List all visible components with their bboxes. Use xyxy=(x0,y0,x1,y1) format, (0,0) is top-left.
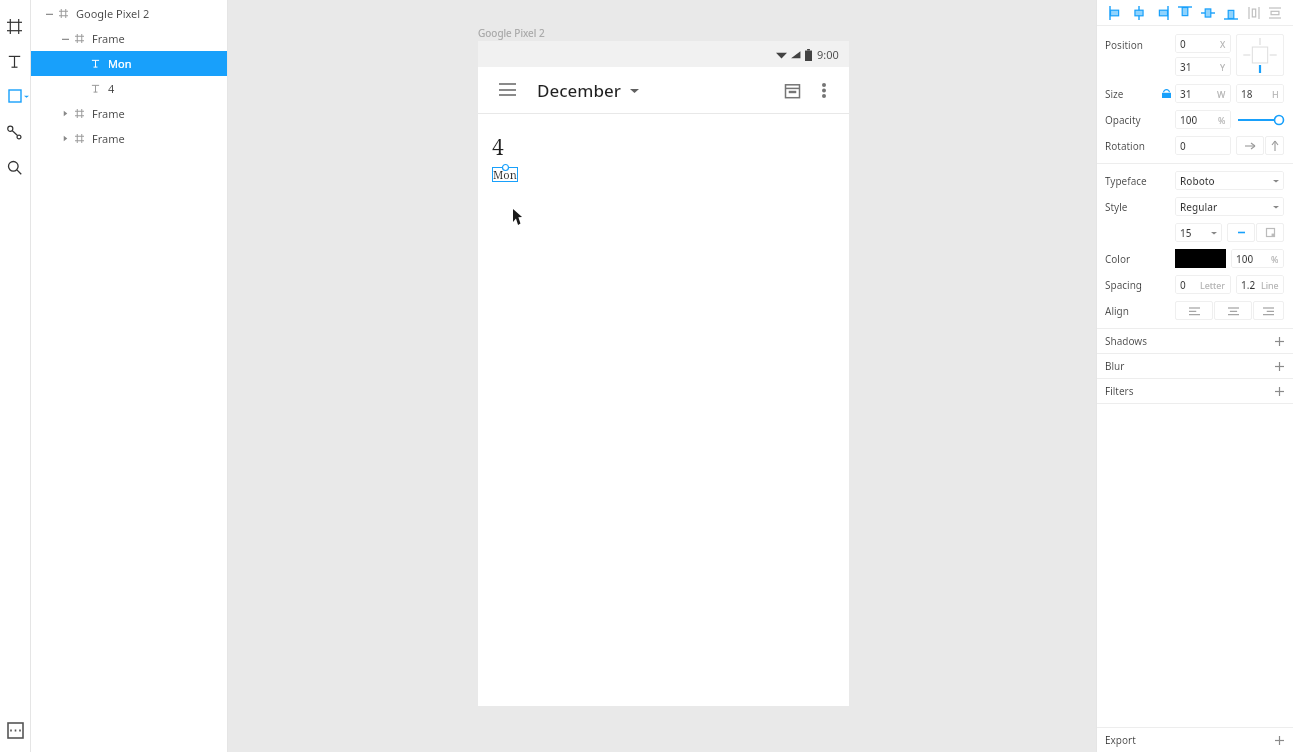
button[interactable]: 0 xyxy=(1175,34,1231,53)
button[interactable]: 31 xyxy=(1175,57,1231,76)
staticText: 18 xyxy=(1241,87,1253,101)
staticText: Typeface xyxy=(1105,174,1147,188)
staticText: Blur xyxy=(1105,359,1125,373)
button[interactable]: Align top xyxy=(1174,2,1196,24)
button[interactable]: Align vertical center xyxy=(1197,2,1219,24)
staticText: Align xyxy=(1105,304,1129,318)
button[interactable]: Align text left xyxy=(1175,301,1213,320)
button[interactable]: Constraints xyxy=(1236,34,1284,76)
button[interactable]: Filters xyxy=(1096,379,1293,403)
button[interactable]: Line height xyxy=(1227,223,1255,242)
staticText: Frame xyxy=(92,106,125,121)
button[interactable]: Auto resize xyxy=(1256,223,1284,242)
staticText: X xyxy=(1220,38,1226,50)
staticText: 9:00 xyxy=(817,47,839,62)
button[interactable]: Regular xyxy=(1175,197,1284,216)
staticText: Shadows xyxy=(1105,334,1147,348)
staticText: Google Pixel 2 xyxy=(76,6,150,21)
button[interactable]: Export xyxy=(1096,728,1293,752)
staticText: H xyxy=(1272,88,1279,100)
staticText: 15 xyxy=(1180,226,1192,240)
staticText: Style xyxy=(1105,200,1128,214)
staticText: % xyxy=(1271,253,1279,265)
staticText: Letter xyxy=(1200,279,1226,291)
button[interactable]: 100 xyxy=(1231,249,1284,268)
staticText: Position xyxy=(1105,38,1143,52)
button[interactable]: 0 xyxy=(1175,275,1231,294)
staticText: Size xyxy=(1105,87,1124,101)
staticText: W xyxy=(1217,88,1226,100)
button[interactable]: Shadows xyxy=(1096,329,1293,353)
button[interactable]: Frame xyxy=(31,126,228,151)
button[interactable]: 15 xyxy=(1175,223,1222,242)
staticText: Google Pixel 2 xyxy=(478,26,545,40)
staticText: 100 xyxy=(1180,113,1198,127)
button[interactable]: Pen tool xyxy=(0,124,31,140)
button[interactable]: 18 xyxy=(1236,84,1284,103)
button[interactable]: Frame tool xyxy=(0,18,31,34)
staticText: 31 xyxy=(1180,60,1192,74)
staticText: Frame xyxy=(92,31,125,46)
button[interactable]: Distribute horizontally xyxy=(1243,2,1265,24)
button[interactable]: Flip vertical xyxy=(1265,136,1284,155)
button[interactable]: Align left xyxy=(1105,2,1127,24)
staticText: 0 xyxy=(1180,278,1186,292)
button[interactable]: 100 xyxy=(1175,110,1231,129)
staticText: Line xyxy=(1261,279,1279,291)
staticText: Opacity xyxy=(1105,113,1141,127)
staticText: Y xyxy=(1220,61,1226,73)
button[interactable]: Menu xyxy=(494,77,520,103)
button[interactable]: Search xyxy=(0,159,31,175)
button[interactable]: 31 xyxy=(1175,84,1231,103)
button[interactable]: Distribute vertically xyxy=(1266,2,1284,24)
button[interactable]: Align horizontal center xyxy=(1128,2,1150,24)
staticText: Rotation xyxy=(1105,139,1145,153)
button[interactable]: Roboto xyxy=(1175,171,1284,190)
staticText: 4 xyxy=(108,81,115,96)
staticText: Filters xyxy=(1105,384,1134,398)
button[interactable]: 1.2 xyxy=(1236,275,1284,294)
button[interactable]: Mon xyxy=(31,51,228,76)
button[interactable]: 4 xyxy=(31,76,228,101)
staticText: Roboto xyxy=(1180,174,1215,188)
button[interactable]: Shape tool xyxy=(0,88,31,104)
staticText: Regular xyxy=(1180,200,1218,214)
staticText: 31 xyxy=(1180,87,1192,101)
button[interactable]: Blur xyxy=(1096,354,1293,378)
button[interactable]: Align text center xyxy=(1214,301,1252,320)
staticText: Mon xyxy=(493,167,517,182)
staticText: Spacing xyxy=(1105,278,1142,292)
staticText: Export xyxy=(1105,733,1136,747)
staticText: 100 xyxy=(1236,252,1254,266)
button[interactable]: 0 xyxy=(1175,136,1231,155)
staticText: 4 xyxy=(492,133,504,162)
staticText: Mon xyxy=(108,56,132,71)
button[interactable]: December xyxy=(537,79,639,102)
button[interactable]: Align bottom xyxy=(1220,2,1242,24)
staticText: 0 xyxy=(1180,139,1186,153)
button[interactable]: Frame xyxy=(31,26,228,51)
button[interactable]: Align text right xyxy=(1253,301,1284,320)
staticText: % xyxy=(1218,114,1226,126)
staticText: Frame xyxy=(92,131,125,146)
button[interactable]: More options xyxy=(809,75,839,105)
button[interactable]: Google Pixel 2 xyxy=(31,1,228,26)
button[interactable]: Components xyxy=(7,722,24,739)
button[interactable]: Text tool xyxy=(0,53,31,69)
button[interactable]: Frame xyxy=(31,101,228,126)
button[interactable]: Calendar view xyxy=(777,75,807,105)
staticText: 0 xyxy=(1180,37,1186,51)
button[interactable]: Align right xyxy=(1151,2,1173,24)
button[interactable]: Flip horizontal xyxy=(1236,136,1264,155)
button[interactable]: Mon xyxy=(493,167,517,182)
staticText: December xyxy=(537,79,621,102)
staticText: Color xyxy=(1105,252,1131,266)
staticText: 1.2 xyxy=(1241,278,1256,292)
